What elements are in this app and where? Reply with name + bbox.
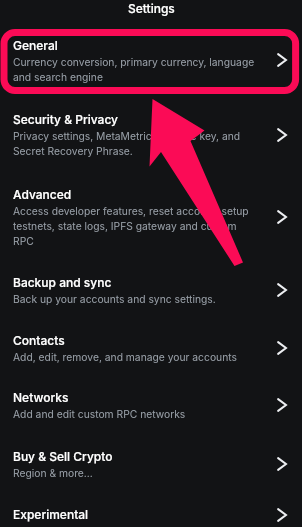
staticText: Region & more... — [13, 467, 93, 479]
staticText: Backup and sync — [13, 275, 112, 290]
staticText: Security & Privacy — [13, 112, 118, 127]
staticText: Back up your accounts and sync settings. — [13, 293, 216, 305]
other: Experimental — [273, 506, 291, 524]
staticText: Advanced — [13, 187, 72, 202]
staticText: Contacts — [13, 333, 65, 348]
button[interactable]: Backup and sync — [0, 261, 302, 319]
button[interactable]: General — [0, 23, 302, 97]
staticText: Experimental — [13, 507, 89, 522]
staticText: Add and edit custom RPC networks — [13, 408, 186, 420]
staticText: General — [13, 38, 58, 53]
other: Contacts — [273, 339, 291, 357]
button[interactable]: Security & Privacy — [0, 97, 302, 172]
other: Networks — [273, 396, 291, 414]
other: Backup and sync — [273, 281, 291, 299]
button[interactable]: Advanced — [0, 172, 302, 261]
button[interactable]: Experimental — [0, 493, 302, 527]
other: Security & Privacy — [273, 126, 291, 144]
other: Advanced — [273, 208, 291, 226]
staticText: Settings — [128, 1, 175, 16]
staticText: Add, edit, remove, and manage your accou… — [13, 351, 237, 363]
staticText: Currency conversion, primary currency, l… — [13, 56, 255, 83]
staticText: Access developer features, reset account… — [13, 205, 249, 247]
staticText: Privacy settings, MetaMetrics, private k… — [13, 130, 241, 157]
staticText: Networks — [13, 390, 69, 405]
other: Buy & Sell Crypto — [273, 455, 291, 473]
button[interactable]: Buy & Sell Crypto — [0, 434, 302, 493]
staticText: Buy & Sell Crypto — [13, 449, 113, 464]
button[interactable]: Networks — [0, 376, 302, 434]
button[interactable]: Contacts — [0, 319, 302, 376]
other: General — [273, 51, 291, 69]
